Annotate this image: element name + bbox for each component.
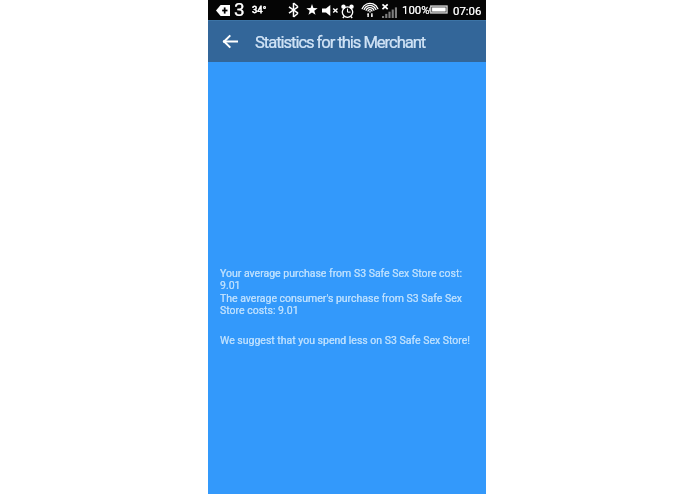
staticText: 07:06 <box>453 4 482 17</box>
staticText: We suggest that you spend less on S3 Saf… <box>220 334 471 346</box>
staticText: Statistics for this Merchant <box>255 33 426 52</box>
staticText: 3 <box>234 0 245 18</box>
staticText: 34° <box>252 4 267 15</box>
staticText: Your average purchase from S3 Safe Sex S… <box>220 267 478 292</box>
button[interactable]: Back <box>208 20 251 62</box>
staticText: 100% <box>402 3 430 16</box>
staticText: The average consumer's purchase from S3 … <box>220 292 478 317</box>
